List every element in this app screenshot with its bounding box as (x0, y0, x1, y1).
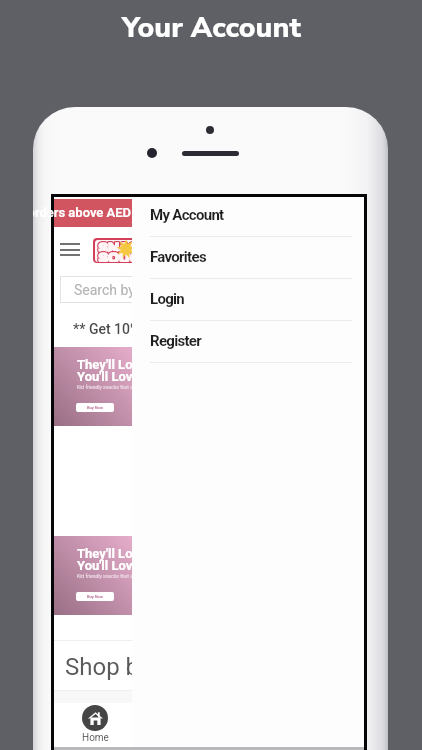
button[interactable]: Favorites (132, 237, 364, 279)
staticText: SOUQ (97, 250, 140, 262)
staticText: Buy Now (87, 594, 103, 599)
staticText: SNACK (97, 242, 149, 257)
staticText: SNACK (97, 241, 149, 256)
staticText: You'll Love It (77, 558, 151, 573)
staticText: Login (150, 290, 185, 308)
button[interactable]: Open menu (60, 243, 80, 256)
staticText: SOUQ (99, 250, 142, 262)
staticText: Search by Product Name (74, 282, 229, 298)
staticText: SNACK (99, 242, 151, 257)
staticText: SOUQ (98, 251, 141, 262)
staticText: Kid friendly snacks that are fun to eat (77, 384, 160, 390)
staticText: SOUQ (97, 252, 140, 262)
staticText: SNACK (99, 240, 151, 255)
button[interactable]: Buy Now (76, 403, 114, 412)
staticText: Shop by Category (65, 653, 253, 681)
staticText: Free delivery on all orders above AED 10… (33, 205, 235, 220)
staticText: SOUQ (98, 252, 141, 262)
staticText: Your Account (122, 8, 301, 47)
staticText: My Account (150, 206, 224, 224)
staticText: SNACK (98, 242, 150, 257)
button[interactable]: Register (132, 321, 364, 363)
staticText: SNACK (98, 241, 150, 256)
staticText: SOUQ (97, 251, 140, 262)
staticText: You'll Love It (77, 369, 151, 384)
staticText: Home (82, 732, 109, 744)
button[interactable]: Buy Now (76, 592, 114, 601)
staticText: SNACK (97, 240, 149, 255)
staticText: They'll Love It, (77, 357, 161, 372)
button[interactable]: Snack Souq logo (93, 238, 155, 263)
staticText: Favorites (150, 248, 206, 266)
staticText: SOUQ (98, 250, 141, 262)
staticText: Buy Now (87, 405, 103, 410)
staticText: SNACK (98, 240, 150, 255)
staticText: SOUQ (99, 252, 142, 262)
staticText: ** Get 10% off your first order ** (73, 321, 274, 337)
staticText: Register (150, 332, 202, 350)
staticText: Kid friendly snacks that are fun to eat (77, 573, 160, 579)
button[interactable]: Home (74, 705, 116, 744)
staticText: SOUQ (99, 251, 142, 262)
button[interactable]: Search by Product Name (60, 276, 310, 303)
staticText: They'll Love It, (77, 546, 161, 561)
button[interactable]: Login (132, 279, 364, 321)
staticText: SNACK (99, 241, 151, 256)
button[interactable]: My Account (132, 195, 364, 237)
